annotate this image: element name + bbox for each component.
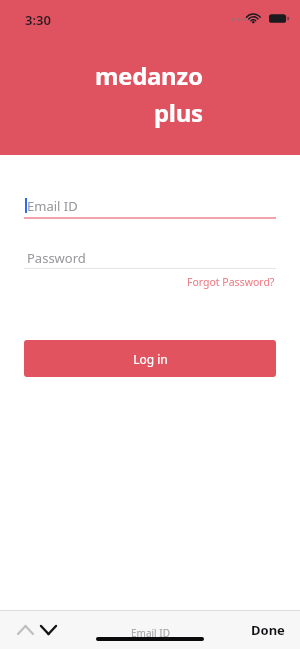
button[interactable]: Log in [24,340,276,377]
staticText: Done [251,621,285,639]
staticText: Log in [133,351,168,367]
button[interactable]: Done [247,615,289,645]
staticText: Email ID [27,197,78,215]
staticText: Forgot Password? [187,275,275,289]
staticText: medanzo [95,59,203,92]
staticText: Email ID [131,626,170,640]
button[interactable]: Forgot Password? [186,272,276,292]
button[interactable]: Next field [35,617,61,643]
button[interactable]: Previous field [12,617,38,643]
button[interactable]: Email ID [24,196,276,220]
staticText: 3:30 [25,11,51,29]
staticText: plus [154,96,203,129]
staticText: Password [27,249,86,267]
button[interactable]: Password [24,248,276,270]
